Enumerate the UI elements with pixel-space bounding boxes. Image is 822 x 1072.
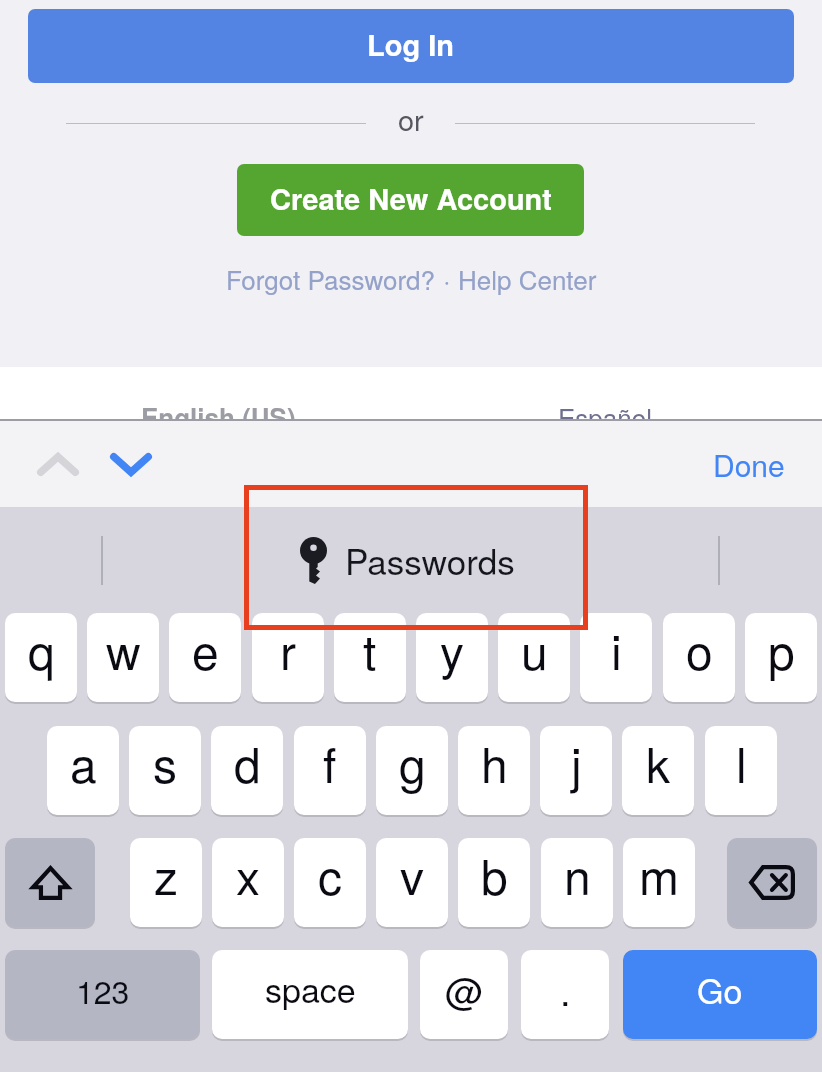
button[interactable]: English (US) (141, 398, 301, 438)
staticText: Done (713, 443, 785, 486)
staticText: j (571, 728, 582, 797)
button[interactable]: z (130, 838, 202, 927)
staticText: b (481, 840, 508, 909)
staticText: space (265, 964, 356, 1013)
button[interactable]: c (294, 838, 366, 927)
button[interactable]: Previous field (20, 431, 96, 497)
button[interactable]: p (745, 613, 817, 702)
button[interactable]: Passwords (244, 507, 588, 610)
staticText: . (560, 962, 571, 1016)
staticText: g (399, 728, 426, 797)
button[interactable]: w (87, 613, 159, 702)
staticText: p (768, 615, 795, 684)
button[interactable]: v (376, 838, 448, 927)
staticText: o (686, 615, 713, 684)
button[interactable]: Shift (5, 838, 95, 927)
staticText: @ (445, 962, 484, 1016)
staticText: k (646, 728, 671, 797)
button[interactable]: x (212, 838, 284, 927)
staticText: Passwords (345, 535, 515, 585)
button[interactable]: space (212, 950, 408, 1039)
staticText: Español (558, 398, 652, 435)
staticText: · (436, 260, 458, 296)
staticText: English (US) (141, 398, 296, 435)
staticText: l (736, 728, 747, 797)
staticText: c (318, 840, 343, 909)
button[interactable]: o (663, 613, 735, 702)
staticText: h (481, 728, 508, 797)
button[interactable]: y (416, 613, 488, 702)
staticText: x (236, 840, 261, 909)
staticText: n (564, 840, 591, 909)
button[interactable]: Create New Account (237, 164, 584, 236)
button[interactable]: @ (420, 950, 508, 1039)
staticText: r (280, 615, 296, 684)
button[interactable]: g (376, 726, 448, 815)
button[interactable]: . (521, 950, 609, 1039)
button[interactable]: Go (623, 950, 817, 1039)
staticText: Create New Account (270, 177, 552, 219)
button[interactable]: l (705, 726, 777, 815)
staticText: z (154, 840, 179, 909)
button[interactable]: s (129, 726, 201, 815)
staticText: y (440, 615, 465, 684)
staticText: a (70, 728, 97, 797)
staticText: d (234, 728, 261, 797)
button[interactable]: d (211, 726, 283, 815)
staticText: Log In (367, 23, 455, 65)
button[interactable]: r (252, 613, 324, 702)
button[interactable]: j (540, 726, 612, 815)
button[interactable]: m (623, 838, 695, 927)
button[interactable]: Help Center (458, 260, 597, 296)
staticText: q (28, 615, 55, 684)
button[interactable]: Backspace (727, 838, 817, 927)
staticText: u (521, 615, 548, 684)
staticText: w (106, 615, 141, 684)
button[interactable]: u (498, 613, 570, 702)
button[interactable]: Español (558, 398, 678, 438)
button[interactable]: Forgot Password? (226, 260, 436, 296)
button[interactable]: n (541, 838, 613, 927)
staticText: t (363, 615, 377, 684)
button[interactable]: h (458, 726, 530, 815)
button[interactable]: Done (696, 433, 802, 495)
staticText: f (323, 728, 337, 797)
button[interactable]: Next field (93, 431, 169, 497)
button[interactable]: i (580, 613, 652, 702)
button[interactable]: f (294, 726, 366, 815)
button[interactable]: b (458, 838, 530, 927)
staticText: m (639, 840, 679, 909)
staticText: s (153, 728, 178, 797)
button[interactable]: a (47, 726, 119, 815)
button[interactable]: k (622, 726, 694, 815)
button[interactable]: Log In (28, 9, 794, 83)
staticText: i (611, 615, 622, 684)
button[interactable]: 123 (5, 950, 200, 1039)
staticText: Go (697, 965, 743, 1014)
staticText: v (400, 840, 425, 909)
staticText: 123 (76, 967, 130, 1013)
staticText: e (192, 615, 219, 684)
button[interactable]: q (5, 613, 77, 702)
button[interactable]: e (169, 613, 241, 702)
staticText: or (398, 98, 424, 134)
button[interactable]: t (334, 613, 406, 702)
